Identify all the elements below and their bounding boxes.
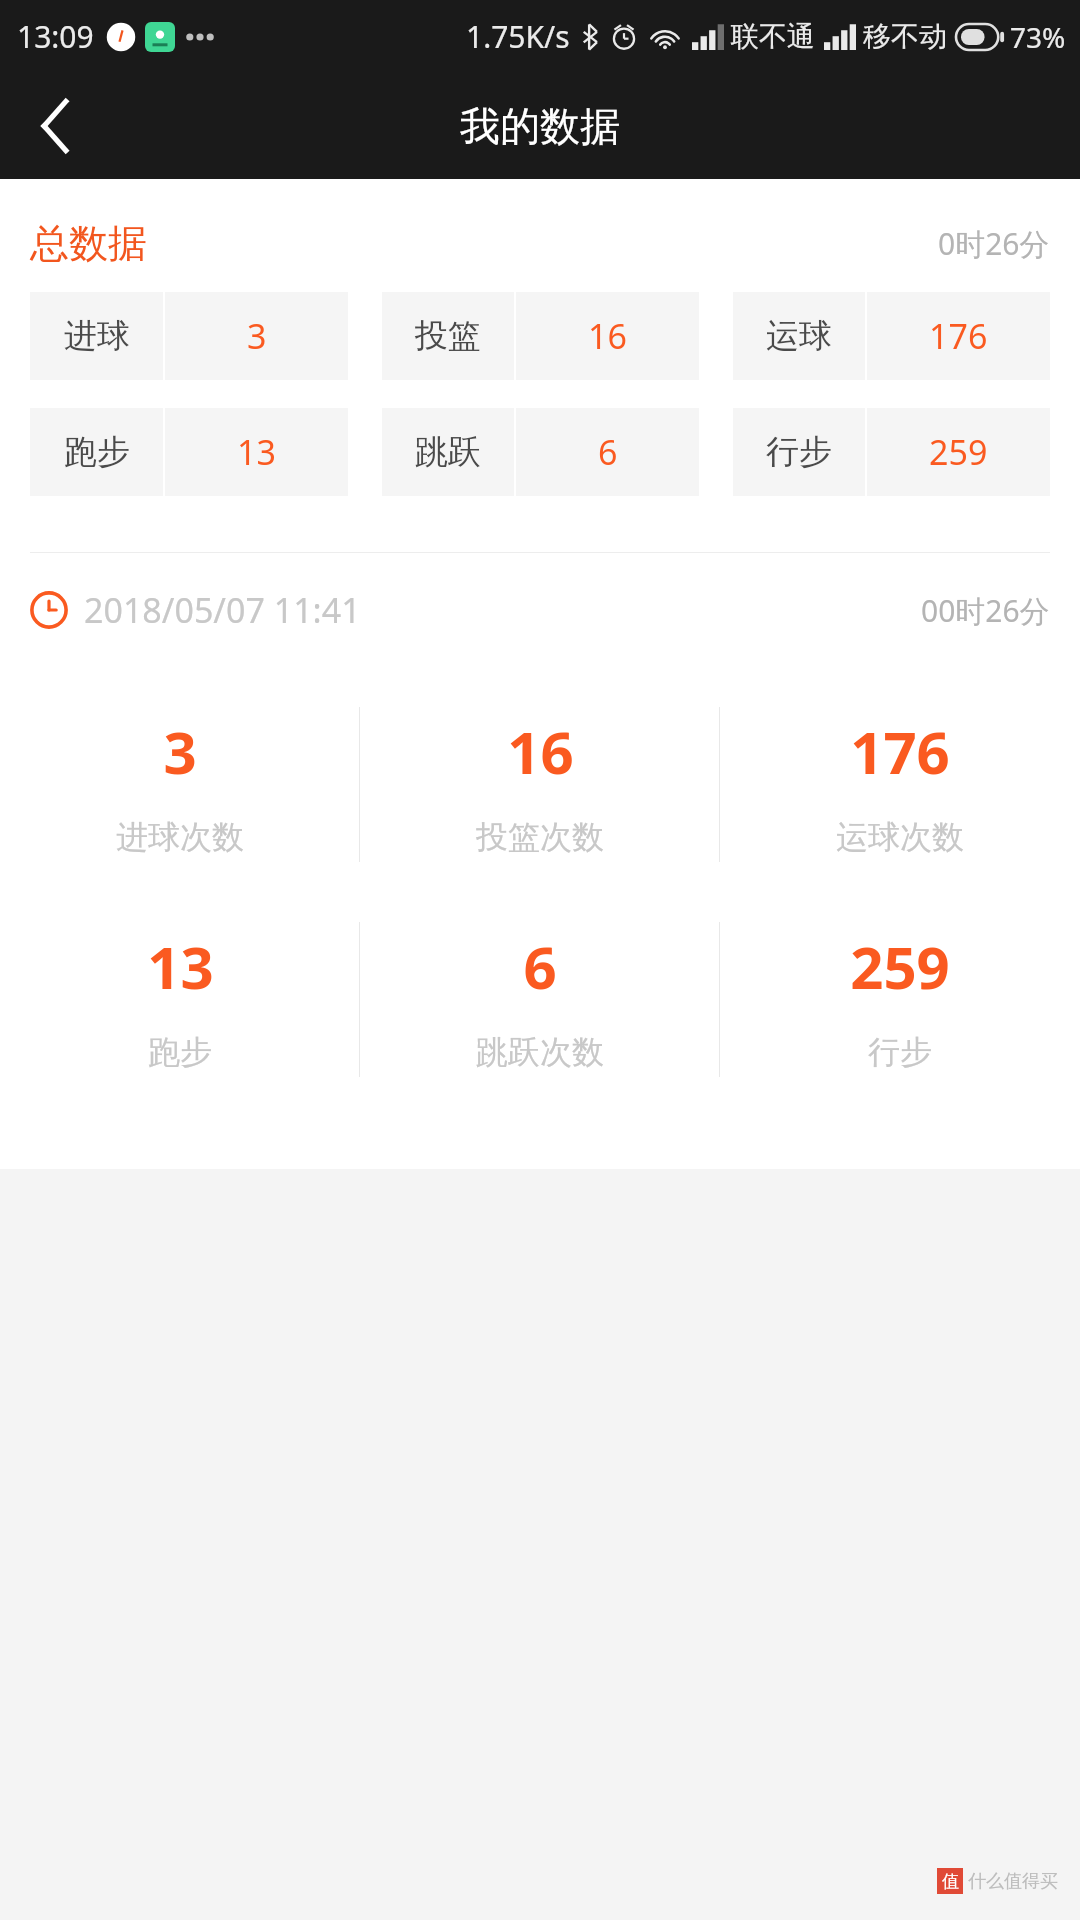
button[interactable]: 16: [360, 677, 720, 892]
staticText: 我的数据: [460, 101, 620, 151]
button[interactable]: 3: [0, 677, 360, 892]
staticText: 6: [598, 429, 618, 475]
button[interactable]: Back: [0, 73, 110, 179]
button[interactable]: 运球: [733, 292, 1050, 380]
button[interactable]: 跳跃: [382, 408, 699, 496]
staticText: 进球: [64, 315, 130, 357]
staticText: 3: [247, 313, 267, 359]
button[interactable]: 行步: [733, 408, 1050, 496]
staticText: 投篮次数: [476, 817, 604, 857]
button[interactable]: 259: [720, 892, 1080, 1107]
staticText: 投篮: [415, 315, 481, 357]
staticText: 移不动: [863, 19, 947, 54]
button[interactable]: 176: [720, 677, 1080, 892]
staticText: 运球: [766, 315, 832, 357]
staticText: 6: [523, 927, 557, 1006]
staticText: 跑步: [64, 431, 130, 473]
staticText: 16: [507, 712, 574, 791]
staticText: 0时26分: [938, 223, 1050, 264]
staticText: 跳跃: [415, 431, 481, 473]
staticText: 联不通: [731, 19, 815, 54]
staticText: 13:09: [17, 16, 94, 57]
button[interactable]: 投篮: [382, 292, 699, 380]
staticText: 176: [929, 313, 988, 359]
staticText: 跳跃次数: [476, 1032, 604, 1072]
staticText: 进球次数: [116, 817, 244, 857]
staticText: 259: [850, 927, 950, 1006]
staticText: 13: [237, 429, 276, 475]
staticText: 259: [929, 429, 988, 475]
button[interactable]: 6: [360, 892, 720, 1107]
staticText: 行步: [766, 431, 832, 473]
staticText: 13: [147, 927, 214, 1006]
staticText: 00时26分: [921, 590, 1050, 631]
staticText: 73%: [1010, 18, 1066, 56]
staticText: 什么值得买: [968, 1870, 1058, 1893]
button[interactable]: 进球: [30, 292, 348, 380]
staticText: 行步: [868, 1032, 932, 1072]
staticText: 1.75K/s: [466, 16, 570, 57]
staticText: 值: [942, 1871, 959, 1892]
staticText: 3: [163, 712, 197, 791]
staticText: 16: [588, 313, 627, 359]
button[interactable]: 跑步: [30, 408, 348, 496]
staticText: 176: [850, 712, 950, 791]
staticText: 运球次数: [836, 817, 964, 857]
staticText: 2018/05/07 11:41: [84, 587, 361, 633]
button[interactable]: 13: [0, 892, 360, 1107]
staticText: 跑步: [148, 1032, 212, 1072]
staticText: 总数据: [30, 219, 147, 268]
